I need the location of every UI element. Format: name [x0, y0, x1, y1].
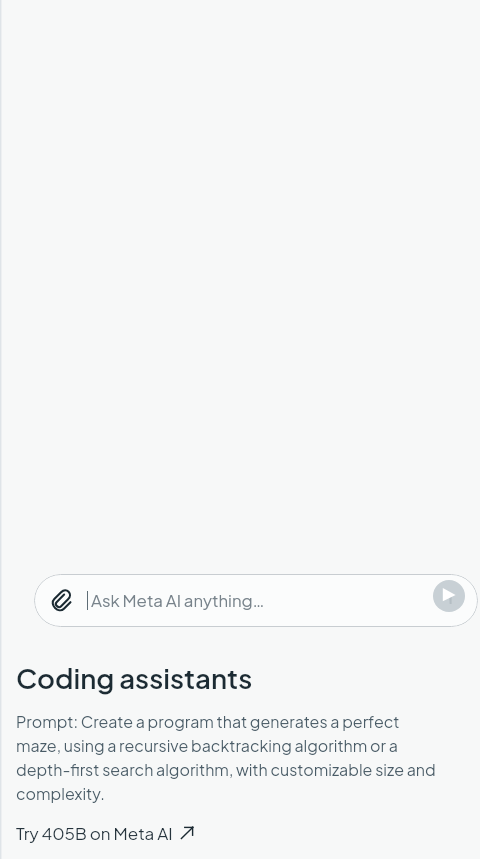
staticText: Coding assistants: [16, 660, 253, 695]
staticText: Try 405B on Meta AI: [16, 822, 173, 843]
button[interactable]: Try 405B on Meta AI: [16, 822, 194, 843]
button[interactable]: Ask Meta AI anything…: [34, 574, 478, 627]
button[interactable]: Send: [433, 580, 465, 612]
staticText: Ask Meta AI anything…: [91, 590, 265, 611]
staticText: Prompt: Create a program that generates …: [16, 708, 444, 804]
